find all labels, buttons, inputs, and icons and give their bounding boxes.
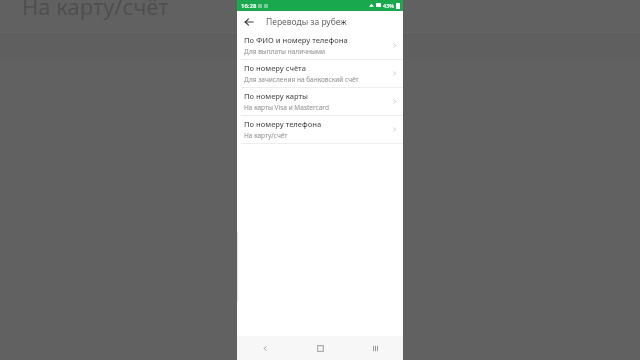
button[interactable]: По номеру счёта	[237, 60, 403, 87]
button[interactable]: Recents	[348, 336, 403, 360]
staticText: На карту/счёт	[244, 131, 288, 140]
staticText: Для зачисления на банковский счёт	[244, 75, 359, 84]
staticText: По номеру телефона	[244, 119, 322, 129]
staticText: По ФИО и номеру телефона	[244, 35, 348, 45]
button[interactable]: Home	[293, 336, 348, 360]
button[interactable]: По номеру карты	[237, 88, 403, 115]
staticText: По номеру карты	[244, 91, 308, 101]
button[interactable]: Back	[237, 336, 293, 360]
staticText: Переводы за рубеж	[266, 16, 347, 28]
staticText: На карты Visa и Mastercard	[244, 103, 329, 112]
button[interactable]: Назад	[240, 13, 258, 31]
staticText: 43%	[383, 2, 394, 9]
staticText: По номеру счёта	[244, 63, 306, 73]
button[interactable]: По номеру телефона	[237, 116, 403, 143]
button[interactable]: По ФИО и номеру телефона	[237, 32, 403, 59]
staticText: 16:28	[241, 2, 257, 10]
staticText: На карту/счёт	[22, 0, 169, 21]
staticText: Для выплаты наличными	[244, 47, 325, 56]
